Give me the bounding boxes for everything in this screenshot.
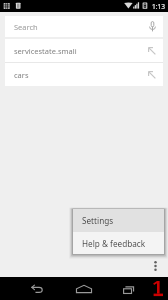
staticText: Settings [82,215,114,226]
button[interactable]: Settings [73,209,164,232]
button[interactable]: Voice search [142,16,163,37]
button[interactable]: More options [147,256,164,276]
staticText: Help & feedback [82,238,146,249]
button[interactable]: Insert suggestion [140,63,163,86]
button[interactable]: servicestate.smali [5,39,163,62]
staticText: Search [14,22,38,32]
button[interactable]: Home [74,279,94,299]
staticText: 1:13 [152,2,166,11]
button[interactable]: Recents [118,279,138,299]
button[interactable]: Help & feedback [73,232,164,254]
button[interactable]: Back [26,279,46,299]
staticText: cars [14,70,140,80]
staticText: servicestate.smali [14,46,140,56]
button[interactable]: Insert suggestion [140,39,163,62]
button[interactable]: Search [5,16,163,37]
button[interactable]: cars [5,63,163,86]
